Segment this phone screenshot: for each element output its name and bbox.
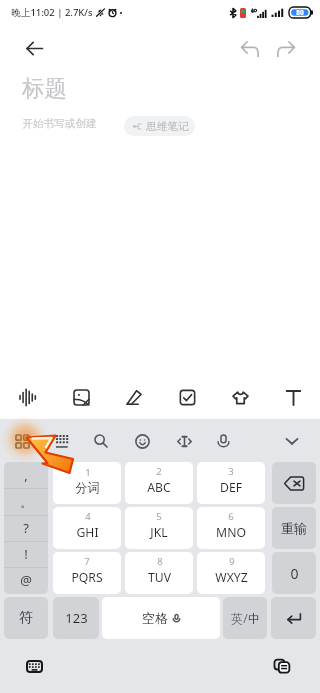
button[interactable]: 5 [125, 507, 193, 549]
button[interactable]: Backspace [272, 462, 316, 504]
button[interactable]: Keyboard [17, 649, 51, 683]
staticText: 123 [65, 609, 88, 627]
staticText: @ [20, 571, 32, 589]
staticText: / [243, 610, 248, 626]
button[interactable]: Draw [108, 376, 161, 419]
button[interactable]: Undo [231, 29, 269, 67]
staticText: JKL [150, 524, 168, 541]
button[interactable]: Redo [266, 29, 304, 67]
button[interactable]: Todo [161, 376, 214, 419]
staticText: 重输 [281, 520, 307, 536]
button[interactable]: Move cursor [167, 424, 201, 458]
staticText: 中 [248, 611, 260, 626]
button[interactable]: 6 [197, 507, 265, 549]
button[interactable]: Keyboard layouts [5, 424, 39, 458]
button[interactable]: 7 [53, 552, 121, 594]
staticText: 5 [156, 510, 162, 523]
staticText: ABC [147, 479, 171, 496]
button[interactable]: 。 [4, 489, 48, 516]
staticText: 标题 [22, 74, 67, 102]
button[interactable]: 3 [197, 462, 265, 504]
button[interactable]: 9 [197, 552, 265, 594]
button[interactable]: 2 [125, 462, 193, 504]
button[interactable]: Back [15, 29, 53, 67]
button[interactable]: Style [214, 376, 267, 419]
staticText: GHI [76, 524, 99, 541]
button[interactable]: 空格 [102, 597, 220, 639]
button[interactable]: ! [4, 542, 48, 568]
staticText: 英 [231, 611, 243, 626]
staticText: 开始书写或创建 [22, 117, 97, 130]
staticText: MNO [216, 524, 246, 541]
button[interactable]: ? [4, 516, 48, 542]
button[interactable]: Emoji [125, 424, 159, 458]
button[interactable]: Image [54, 376, 108, 419]
button[interactable]: Audio [0, 376, 54, 419]
button[interactable]: Numeric keypad [45, 424, 79, 458]
staticText: ? [23, 519, 29, 537]
button[interactable]: 0 [272, 552, 316, 594]
staticText: 3 [228, 465, 234, 478]
staticText: 晚上11:02 | 2.7K/s [11, 6, 93, 19]
staticText: 空格 [142, 610, 168, 626]
button[interactable]: 符 [4, 597, 48, 639]
button[interactable]: Enter [271, 597, 316, 639]
button[interactable]: 重输 [272, 507, 316, 549]
staticText: PQRS [71, 569, 103, 586]
staticText: 符 [19, 609, 33, 627]
staticText: 8 [157, 555, 163, 568]
staticText: 1 [85, 466, 91, 479]
button[interactable]: Voice input [206, 424, 240, 458]
staticText: 分词 [75, 480, 100, 495]
staticText: ! [24, 545, 28, 563]
staticText: DEF [220, 479, 242, 496]
button[interactable]: 123 [53, 597, 99, 639]
staticText: 80 [296, 8, 304, 17]
button[interactable]: 4 [53, 507, 121, 549]
staticText: 6 [228, 510, 234, 523]
button[interactable]: Hide keyboard [275, 424, 309, 458]
button[interactable]: @ [4, 568, 48, 594]
staticText: 0 [290, 564, 299, 583]
button[interactable]: 8 [125, 552, 193, 594]
staticText: 。 [20, 494, 33, 510]
button[interactable]: Recents [265, 649, 299, 683]
staticText: 4 [85, 510, 91, 523]
button[interactable]: 英 [223, 597, 267, 639]
staticText: TUV [148, 569, 171, 586]
button[interactable]: Search [84, 424, 118, 458]
staticText: WXYZ [215, 569, 248, 586]
button[interactable]: 思维笔记 [124, 116, 195, 136]
staticText: , [24, 466, 28, 484]
button[interactable]: Text [267, 376, 320, 419]
staticText: 2 [156, 465, 162, 478]
staticText: 7 [84, 555, 90, 568]
button[interactable]: , [4, 462, 48, 489]
button[interactable]: 1 [53, 462, 121, 504]
staticText: 思维笔记 [146, 120, 189, 133]
staticText: 9 [229, 555, 235, 568]
